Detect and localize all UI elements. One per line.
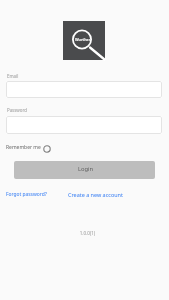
staticText: 1.0.0(1) — [3, 230, 169, 236]
button[interactable]: Forgot password? — [2, 187, 51, 202]
staticText: Email — [7, 73, 19, 79]
button[interactable]: Login — [14, 161, 155, 179]
staticText: Password — [7, 107, 27, 113]
staticText: Create a new account — [68, 191, 123, 198]
button[interactable]: Password input — [6, 116, 162, 134]
button[interactable]: Remember me — [6, 143, 52, 152]
button[interactable]: Email input — [6, 81, 162, 98]
button[interactable]: Create a new account — [64, 187, 127, 202]
staticText: Wurther — [75, 37, 91, 42]
staticText: Remember me — [6, 144, 41, 151]
other: App logo — [63, 21, 105, 60]
staticText: Forgot password? — [6, 191, 47, 198]
staticText: Login — [78, 165, 94, 173]
